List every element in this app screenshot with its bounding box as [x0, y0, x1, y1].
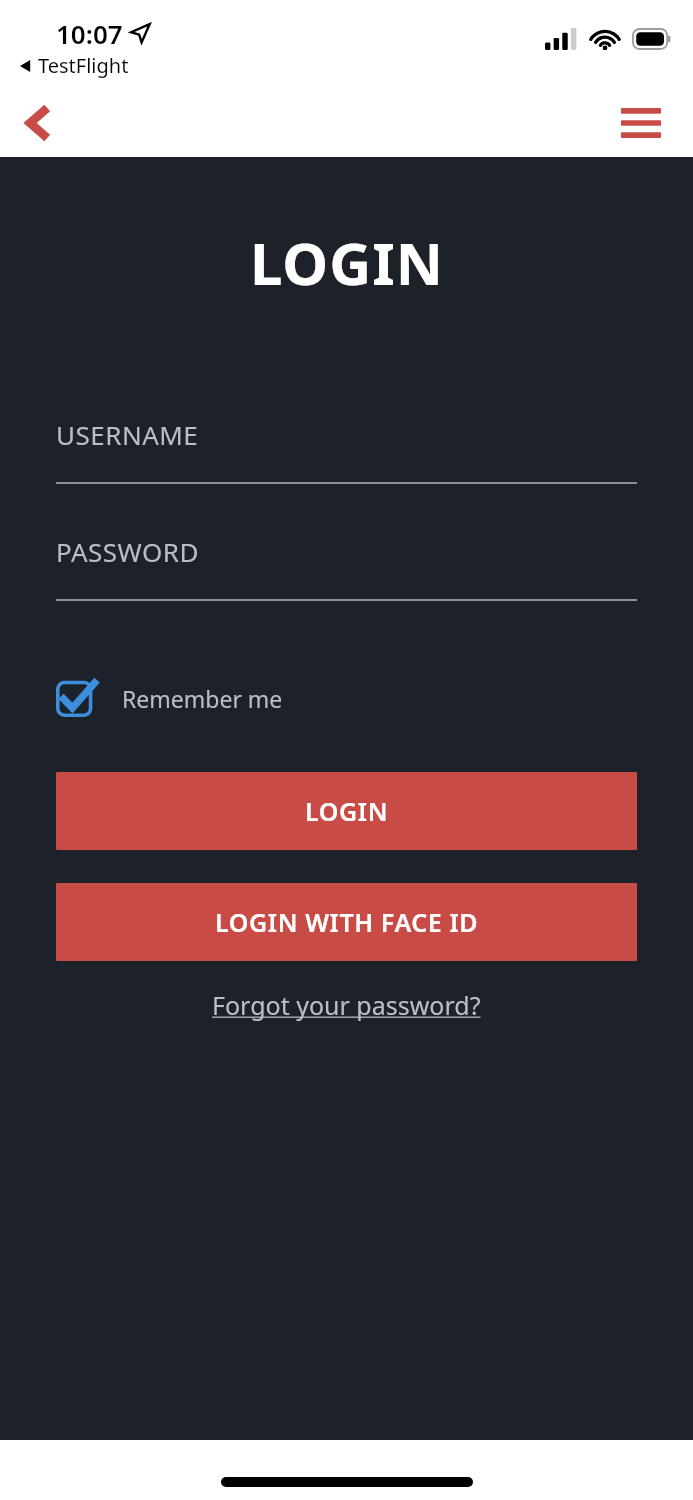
button[interactable]: Remember me — [56, 673, 297, 723]
staticText: LOGIN — [305, 794, 389, 828]
staticText: USERNAME — [56, 417, 199, 452]
staticText: Forgot your password? — [212, 988, 481, 1022]
button[interactable]: PASSWORD — [56, 534, 637, 601]
button[interactable]: USERNAME — [56, 417, 637, 484]
staticText: PASSWORD — [56, 534, 199, 569]
staticText: LOGIN WITH FACE ID — [215, 905, 479, 939]
staticText: LOGIN — [250, 223, 444, 302]
staticText: Remember me — [122, 683, 283, 714]
button[interactable]: Menu — [615, 97, 667, 149]
button[interactable]: Back — [10, 95, 66, 151]
button[interactable]: LOGIN — [56, 772, 637, 850]
button[interactable]: Forgot your password? — [202, 982, 491, 1028]
button[interactable]: LOGIN WITH FACE ID — [56, 883, 637, 961]
staticText: TestFlight — [38, 52, 129, 79]
staticText: 10:07 — [56, 16, 123, 51]
